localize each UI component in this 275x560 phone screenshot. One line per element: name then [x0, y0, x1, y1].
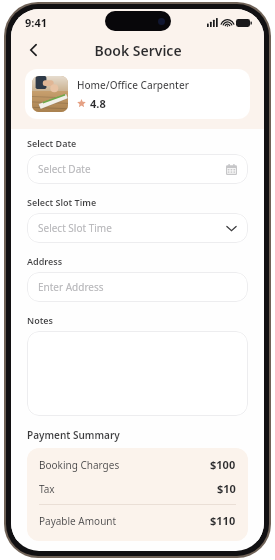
- staticText: $10: [217, 481, 236, 496]
- staticText: Payment Summary: [27, 428, 120, 442]
- button[interactable]: [27, 331, 248, 416]
- staticText: 9:41: [25, 15, 47, 30]
- button[interactable]: Back: [19, 36, 47, 64]
- staticText: 4.8: [90, 96, 106, 111]
- button[interactable]: Select Date: [27, 154, 248, 184]
- staticText: Book Service: [94, 41, 182, 60]
- staticText: Address: [27, 255, 63, 267]
- staticText: Tax: [39, 482, 217, 496]
- button[interactable]: Home/Office Carpenter: [25, 69, 250, 119]
- staticText: Payable Amount: [39, 514, 210, 528]
- button[interactable]: Enter Address: [27, 272, 248, 302]
- staticText: Select Date: [38, 162, 226, 176]
- staticText: Select Slot Time: [38, 221, 226, 235]
- staticText: Enter Address: [38, 280, 237, 294]
- staticText: Notes: [27, 314, 54, 326]
- staticText: Booking Charges: [39, 458, 210, 472]
- other: Open slot time list: [226, 225, 237, 232]
- staticText: $100: [210, 457, 236, 472]
- staticText: Select Slot Time: [27, 196, 97, 208]
- staticText: Select Date: [27, 137, 77, 149]
- staticText: Home/Office Carpenter: [77, 78, 189, 92]
- button[interactable]: Select Slot Time: [27, 213, 248, 243]
- staticText: $110: [210, 513, 236, 528]
- other: Pick date: [226, 164, 237, 175]
